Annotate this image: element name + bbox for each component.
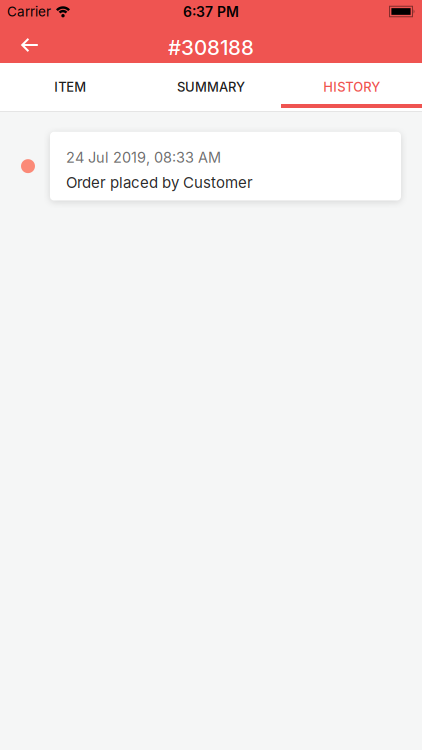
staticText: ITEM: [54, 79, 86, 95]
staticText: 6:37 PM: [183, 3, 239, 20]
button[interactable]: Back: [0, 27, 39, 63]
button[interactable]: HISTORY: [281, 65, 422, 109]
staticText: 24 Jul 2019, 08:33 AM: [66, 149, 221, 166]
staticText: HISTORY: [323, 79, 380, 95]
staticText: Order placed by Customer: [66, 173, 253, 191]
staticText: #308188: [168, 35, 254, 60]
button[interactable]: SUMMARY: [141, 65, 281, 109]
staticText: SUMMARY: [177, 79, 245, 95]
button[interactable]: ITEM: [0, 65, 141, 109]
staticText: Carrier: [7, 3, 51, 20]
